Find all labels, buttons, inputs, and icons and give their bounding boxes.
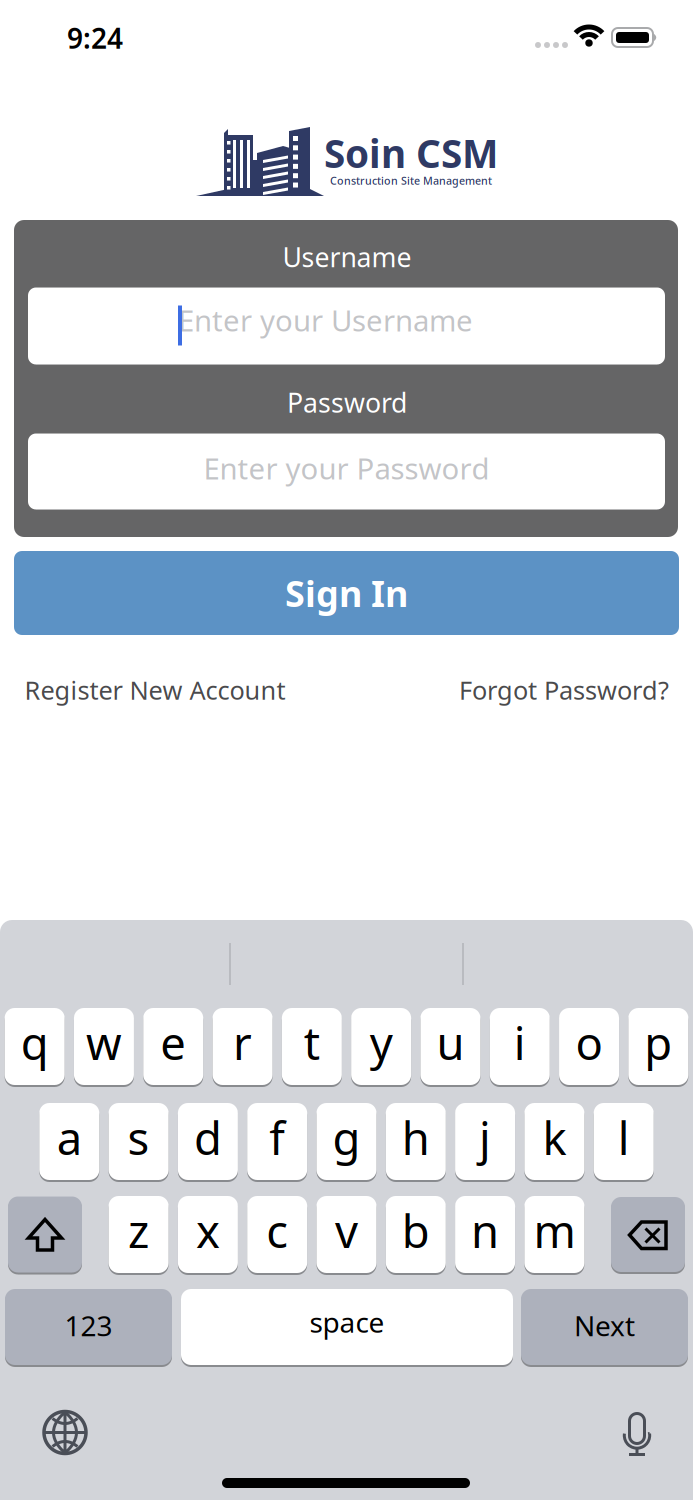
- staticText: j: [479, 1107, 491, 1168]
- staticText: k: [542, 1107, 566, 1168]
- staticText: o: [575, 1012, 602, 1073]
- staticText: 123: [64, 1307, 112, 1344]
- button[interactable]: g: [316, 1102, 376, 1181]
- staticText: d: [194, 1107, 222, 1168]
- staticText: Sign In: [285, 569, 408, 617]
- staticText: space: [309, 1303, 384, 1341]
- button[interactable]: f: [247, 1102, 307, 1181]
- button[interactable]: Password text field: [28, 433, 665, 509]
- staticText: f: [269, 1107, 285, 1168]
- button[interactable]: u: [420, 1007, 480, 1086]
- button[interactable]: e: [143, 1007, 203, 1086]
- staticText: x: [196, 1200, 220, 1261]
- button[interactable]: Forgot Password?: [459, 673, 669, 707]
- staticText: c: [266, 1200, 288, 1261]
- button[interactable]: p: [628, 1007, 688, 1086]
- staticText: n: [471, 1200, 499, 1261]
- button[interactable]: v: [316, 1195, 376, 1274]
- staticText: g: [332, 1107, 360, 1168]
- button[interactable]: Username text field: [28, 287, 665, 364]
- staticText: m: [533, 1200, 575, 1261]
- button[interactable]: h: [386, 1102, 446, 1181]
- staticText: Enter your Password: [203, 448, 489, 487]
- button[interactable]: d: [178, 1102, 238, 1181]
- staticText: i: [514, 1012, 526, 1073]
- button[interactable]: o: [559, 1007, 619, 1086]
- staticText: s: [128, 1107, 150, 1168]
- staticText: a: [57, 1107, 82, 1168]
- staticText: Soin CSM: [324, 127, 498, 179]
- button[interactable]: 123: [5, 1288, 172, 1366]
- staticText: b: [402, 1200, 430, 1261]
- staticText: w: [86, 1012, 122, 1073]
- button[interactable]: Next: [521, 1288, 688, 1366]
- button[interactable]: w: [74, 1007, 134, 1086]
- button[interactable]: c: [247, 1195, 307, 1274]
- staticText: u: [436, 1012, 464, 1073]
- button[interactable]: s: [109, 1102, 169, 1181]
- button[interactable]: Shift: [8, 1195, 82, 1273]
- button[interactable]: x: [178, 1195, 238, 1274]
- staticText: Next: [574, 1307, 635, 1344]
- button[interactable]: k: [524, 1102, 584, 1181]
- staticText: r: [233, 1012, 252, 1073]
- button[interactable]: Delete: [611, 1196, 685, 1273]
- staticText: p: [644, 1012, 672, 1073]
- staticText: Construction Site Management: [330, 173, 492, 188]
- button[interactable]: z: [109, 1195, 169, 1274]
- staticText: l: [618, 1107, 630, 1168]
- button[interactable]: Dictation: [613, 1409, 661, 1457]
- button[interactable]: Next keyboard: [41, 1408, 89, 1456]
- staticText: v: [335, 1200, 358, 1261]
- button[interactable]: n: [455, 1195, 515, 1274]
- button[interactable]: q: [5, 1007, 65, 1086]
- staticText: Password: [287, 385, 407, 420]
- button[interactable]: l: [594, 1102, 654, 1181]
- staticText: q: [21, 1012, 49, 1073]
- staticText: y: [370, 1012, 393, 1073]
- staticText: h: [402, 1107, 430, 1168]
- button[interactable]: b: [386, 1195, 446, 1274]
- staticText: 9:24: [67, 19, 123, 57]
- staticText: z: [128, 1200, 149, 1261]
- button[interactable]: a: [39, 1102, 99, 1181]
- button[interactable]: space: [181, 1288, 513, 1366]
- staticText: e: [160, 1012, 186, 1073]
- staticText: Enter your Username: [178, 300, 473, 339]
- button[interactable]: i: [490, 1007, 550, 1086]
- staticText: Forgot Password?: [459, 673, 669, 707]
- button[interactable]: t: [282, 1007, 342, 1086]
- button[interactable]: j: [455, 1102, 515, 1181]
- button[interactable]: y: [351, 1007, 411, 1086]
- button[interactable]: m: [524, 1195, 584, 1274]
- button[interactable]: Sign In: [14, 551, 679, 635]
- staticText: Username: [282, 239, 411, 275]
- staticText: Register New Account: [24, 673, 285, 707]
- button[interactable]: Register New Account: [24, 673, 285, 707]
- staticText: t: [304, 1012, 320, 1073]
- button[interactable]: r: [212, 1007, 272, 1086]
